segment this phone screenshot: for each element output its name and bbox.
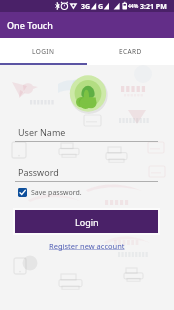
button[interactable]: ECARD: [87, 38, 174, 65]
staticText: One Touch: [7, 19, 53, 31]
button[interactable]: LOGIN: [0, 38, 87, 65]
staticText: LOGIN: [32, 47, 55, 56]
staticText: ECARD: [119, 47, 142, 56]
staticText: 3:21 PM: [140, 2, 167, 12]
button[interactable]: Register new account: [49, 241, 125, 251]
button[interactable]: Save password.: [18, 187, 82, 198]
staticText: Login: [75, 216, 99, 228]
staticText: G: [98, 2, 104, 12]
staticText: 3G: [81, 2, 91, 12]
staticText: User Name: [18, 126, 66, 138]
staticText: Save password.: [31, 188, 82, 198]
staticText: Password: [18, 166, 59, 178]
button[interactable]: Login: [15, 210, 158, 233]
staticText: 44%: [128, 3, 139, 10]
